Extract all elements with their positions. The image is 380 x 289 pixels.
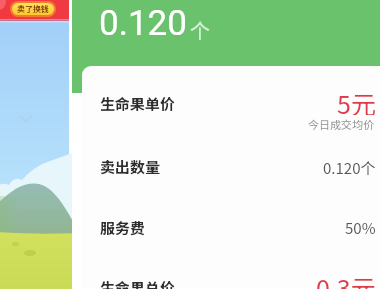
staticText: 卖出数量: [100, 156, 161, 178]
staticText: 个: [190, 15, 210, 44]
staticText: 今日成交均价: [308, 116, 374, 132]
staticText: 5元: [337, 85, 376, 115]
staticText: 50%: [345, 217, 376, 239]
button[interactable]: 生命果单价: [82, 83, 380, 113]
button[interactable]: 生命果总价: [82, 267, 380, 289]
staticText: 卖了换钱: [17, 3, 49, 15]
button[interactable]: 服务费: [82, 207, 380, 237]
button[interactable]: 卖出数量: [82, 146, 380, 176]
staticText: 服务费: [100, 217, 146, 239]
button[interactable]: 卖了换钱: [12, 3, 54, 15]
staticText: 0.120: [99, 3, 187, 44]
staticText: 0.120个: [323, 157, 376, 179]
staticText: 0.3元: [316, 269, 376, 289]
staticText: 生命果单价: [100, 93, 176, 115]
staticText: 生命果总价: [100, 277, 176, 289]
